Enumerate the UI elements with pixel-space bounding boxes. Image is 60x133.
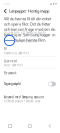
staticText: 9:41 bbox=[4, 2, 11, 5]
staticText: ▲ ▮ ▰ bbox=[50, 2, 57, 5]
staticText: Lånpapper Hentig inapp bbox=[9, 8, 49, 14]
staticText: Besvarsnk bbox=[4, 71, 16, 75]
staticText: Tvgangsskydd bbox=[4, 82, 21, 86]
staticText: Anvand med Samsung account bbox=[4, 95, 44, 99]
staticText: Vill du hamta fil till din enhet och spa… bbox=[4, 16, 55, 43]
staticText: hamtning sakerhet bbox=[4, 51, 29, 55]
button[interactable]: Back bbox=[40, 123, 60, 128]
button[interactable]: Back bbox=[2, 7, 8, 15]
button[interactable]: Home bbox=[20, 124, 40, 128]
staticText: Samsung account bbox=[16, 39, 38, 43]
staticText: Fil bbox=[4, 47, 7, 51]
staticText: ange sakerhet bbox=[4, 63, 23, 67]
staticText: du har inte ett Samsung-konto bbox=[4, 31, 46, 34]
staticText: Lösenord bbox=[4, 59, 17, 63]
button[interactable]: Tvgangsskydd bbox=[4, 80, 56, 87]
button[interactable]: Recent apps bbox=[0, 124, 20, 128]
staticText: olika val papper kanske visas bbox=[4, 99, 40, 103]
